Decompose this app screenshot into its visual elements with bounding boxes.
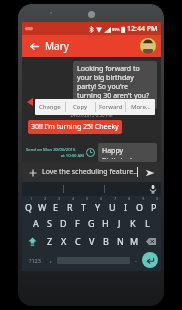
button[interactable]: B [99, 232, 113, 250]
button[interactable]: J [112, 214, 126, 232]
staticText: J [118, 217, 121, 229]
button[interactable]: 9 [133, 196, 147, 214]
staticText: Change [39, 103, 61, 111]
button[interactable]: X [57, 232, 71, 250]
button[interactable]: Shift [22, 232, 43, 250]
staticText: 8 [128, 196, 131, 201]
staticText: Forward [99, 103, 123, 111]
staticText: More... [131, 103, 151, 111]
staticText: C [75, 235, 81, 247]
button[interactable]: Send [142, 165, 157, 180]
staticText: . [135, 255, 137, 265]
staticText: 5 [86, 196, 89, 201]
staticText: Send on Mon 20/06/2016 [26, 147, 76, 153]
button[interactable]: 2 [35, 196, 49, 214]
staticText: B [103, 235, 109, 247]
button[interactable]: Enter [142, 252, 158, 268]
button[interactable]: N [113, 232, 127, 250]
staticText: Q [25, 201, 33, 213]
staticText: 89% [112, 27, 120, 32]
button[interactable]: 7 [105, 196, 119, 214]
staticText: Mary [45, 39, 69, 53]
button[interactable]: More... [126, 99, 155, 115]
button[interactable]: Voice input [145, 182, 161, 196]
button[interactable]: G [84, 214, 98, 232]
staticText: 12:44 PM [127, 24, 158, 34]
staticText: 6 [100, 196, 103, 201]
other: Scheduled [86, 148, 95, 157]
button[interactable]: Backspace [141, 232, 161, 250]
staticText: W [38, 201, 47, 213]
button[interactable]: V [85, 232, 99, 250]
staticText: K [130, 217, 136, 229]
button[interactable]: 5 [77, 196, 91, 214]
button[interactable]: F [70, 214, 84, 232]
staticText: , [50, 255, 52, 265]
button[interactable]: 1 [22, 196, 35, 214]
button[interactable]: 3 [49, 196, 63, 214]
staticText: H [102, 217, 109, 229]
staticText: P [151, 201, 157, 213]
button[interactable]: S [42, 214, 56, 232]
staticText: S [47, 217, 52, 229]
staticText: Copy [73, 103, 88, 111]
button[interactable]: A [29, 214, 42, 232]
button[interactable]: Looking forward to your big birthday par… [73, 61, 157, 109]
button[interactable]: 0 [147, 196, 161, 214]
staticText: E [53, 201, 59, 213]
staticText: A [33, 217, 39, 229]
staticText: 1 [30, 196, 33, 201]
button[interactable]: Love the scheduling feature.. [42, 167, 139, 177]
staticText: 2 [44, 196, 47, 201]
button[interactable]: 8 [119, 196, 133, 214]
staticText: 0 [156, 196, 159, 201]
button[interactable]: Happy Birthday! [98, 143, 157, 162]
button[interactable]: , [45, 250, 57, 270]
staticText: X [61, 235, 67, 247]
staticText: 9 [142, 196, 145, 201]
staticText: U [109, 201, 116, 213]
staticText: 7 [114, 196, 117, 201]
staticText: G [88, 217, 95, 229]
button[interactable]: 6 [91, 196, 105, 214]
staticText: I [124, 201, 128, 213]
button[interactable]: C [71, 232, 85, 250]
staticText: V [89, 235, 95, 247]
button[interactable]: Contact photo [140, 38, 156, 54]
button[interactable]: . [130, 250, 142, 270]
staticText: Delivered [82, 101, 100, 106]
staticText: Happy Birthday! [102, 146, 153, 159]
button[interactable]: 30!! I'm turning 25! Cheeky [28, 120, 122, 134]
button[interactable]: K [126, 214, 140, 232]
staticText: D [60, 217, 67, 229]
button[interactable]: L [140, 214, 154, 232]
staticText: L [145, 217, 150, 229]
staticText: O [136, 201, 144, 213]
staticText: R [67, 201, 73, 213]
button[interactable]: Change [35, 99, 65, 115]
button[interactable]: Copy [66, 99, 95, 115]
button[interactable]: M [127, 232, 141, 250]
button[interactable]: Attach [26, 166, 39, 179]
button[interactable]: H [98, 214, 112, 232]
button[interactable]: ?123 [25, 250, 45, 270]
staticText: 3 [58, 196, 61, 201]
button[interactable]: Z [43, 232, 57, 250]
staticText: Z [47, 235, 53, 247]
button[interactable]: D [56, 214, 70, 232]
button[interactable]: 4 [63, 196, 77, 214]
button[interactable]: Forward [96, 99, 125, 115]
button[interactable]: Back [27, 39, 41, 53]
staticText: 4 [72, 196, 75, 201]
staticText: Love the scheduling feature.. [42, 167, 137, 177]
staticText: 24/07/2015 6:30 PM [26, 112, 157, 118]
staticText: Y [95, 201, 101, 213]
staticText: Looking forward to your big birthday par… [77, 64, 153, 100]
staticText: F [75, 217, 80, 229]
staticText: 30!! I'm turning 25! Cheeky [31, 122, 119, 132]
staticText: T [81, 201, 87, 213]
